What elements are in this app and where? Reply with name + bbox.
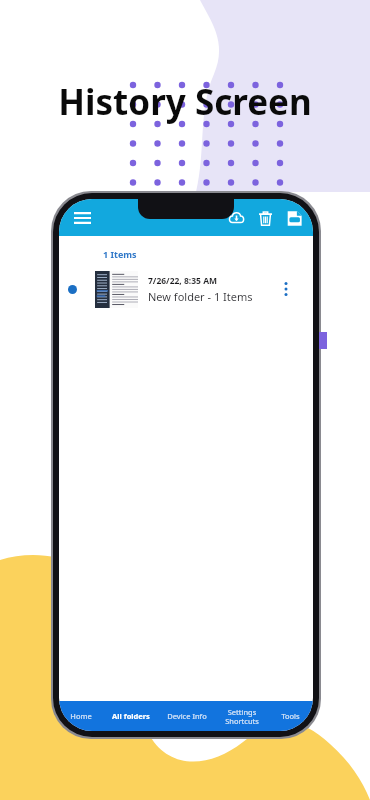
- button[interactable]: 7/26/22, 8:35 AM: [85, 268, 299, 310]
- button[interactable]: Export CSV: [283, 207, 305, 229]
- staticText: 1 Items: [103, 248, 137, 260]
- staticText: New folder - 1 Items: [148, 289, 253, 304]
- staticText: History Screen: [58, 78, 312, 126]
- staticText: 7/26/22, 8:35 AM: [148, 275, 218, 287]
- button[interactable]: Menu: [70, 208, 94, 228]
- staticText: All folders: [112, 711, 150, 721]
- button[interactable]: Settings Shortcuts: [215, 701, 268, 731]
- button[interactable]: More options: [277, 268, 295, 310]
- button[interactable]: Tools: [268, 701, 313, 731]
- staticText: Settings Shortcuts: [225, 707, 259, 726]
- staticText: Tools: [281, 711, 300, 721]
- button[interactable]: All folders: [103, 701, 159, 731]
- button[interactable]: Delete: [254, 207, 276, 229]
- button[interactable]: Device Info: [159, 701, 215, 731]
- button[interactable]: [68, 285, 77, 294]
- button[interactable]: Home: [59, 701, 103, 731]
- staticText: Home: [70, 711, 92, 721]
- button[interactable]: Download: [225, 207, 247, 229]
- staticText: Device Info: [167, 711, 207, 721]
